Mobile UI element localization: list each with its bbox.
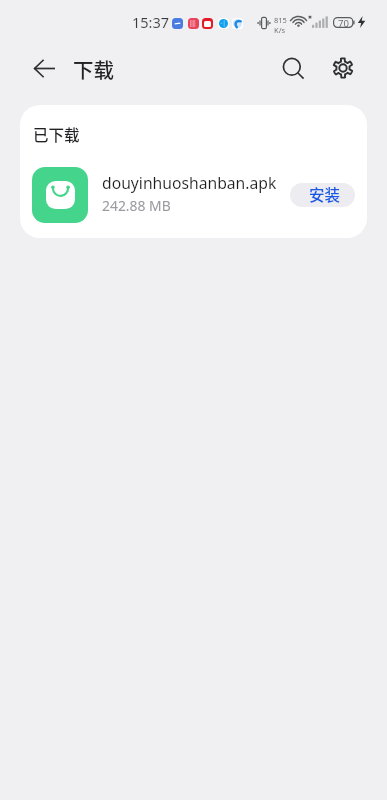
button[interactable]: Back	[22, 46, 66, 90]
staticText: 815	[274, 15, 287, 25]
button[interactable]: Settings	[321, 46, 365, 90]
staticText: 安装	[309, 183, 341, 205]
staticText: douyinhuoshanban.apk	[102, 172, 277, 193]
staticText: 已下载	[33, 123, 80, 145]
button[interactable]: douyinhuoshanban.apk	[20, 159, 367, 231]
staticText: 15:37	[132, 12, 170, 32]
staticText: 下载	[73, 54, 114, 84]
staticText: 70	[338, 17, 349, 28]
button[interactable]: 安装	[290, 183, 355, 207]
button[interactable]: Search	[271, 46, 315, 90]
staticText: K/s	[274, 25, 286, 35]
staticText: 242.88 MB	[102, 196, 171, 215]
